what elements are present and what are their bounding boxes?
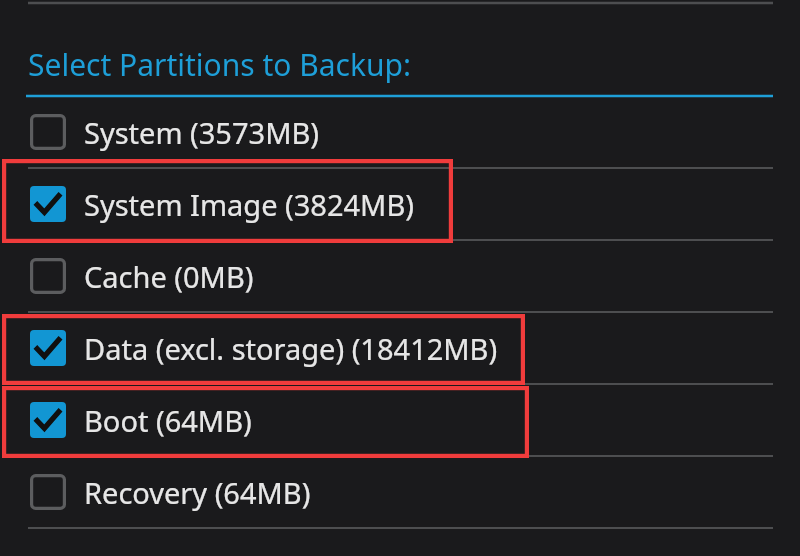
staticText: System Image (3824MB) bbox=[84, 185, 414, 224]
staticText: Cache (0MB) bbox=[84, 257, 254, 296]
button[interactable]: Data (excl. storage) (18412MB) bbox=[0, 312, 800, 384]
staticText: Boot (64MB) bbox=[84, 401, 252, 440]
button[interactable]: System (3573MB) bbox=[0, 96, 800, 168]
button[interactable]: Cache (0MB) bbox=[0, 240, 800, 312]
button[interactable]: Boot (64MB) bbox=[0, 384, 800, 456]
button[interactable]: System Image (3824MB) bbox=[0, 168, 800, 240]
staticText: Recovery (64MB) bbox=[84, 473, 311, 512]
staticText: Data (excl. storage) (18412MB) bbox=[84, 329, 498, 368]
staticText: System (3573MB) bbox=[84, 113, 319, 152]
staticText: Select Partitions to Backup: bbox=[28, 44, 412, 85]
button[interactable]: Recovery (64MB) bbox=[0, 456, 800, 528]
